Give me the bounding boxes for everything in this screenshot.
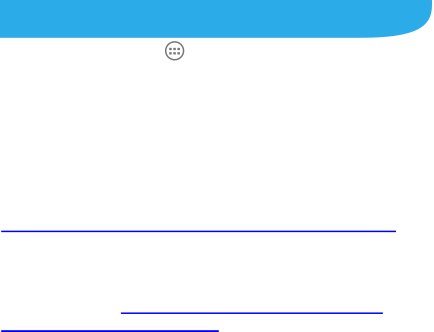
button[interactable]: Apps xyxy=(165,41,185,61)
button[interactable]: Link xyxy=(1,330,219,332)
button[interactable]: Link xyxy=(121,312,383,314)
